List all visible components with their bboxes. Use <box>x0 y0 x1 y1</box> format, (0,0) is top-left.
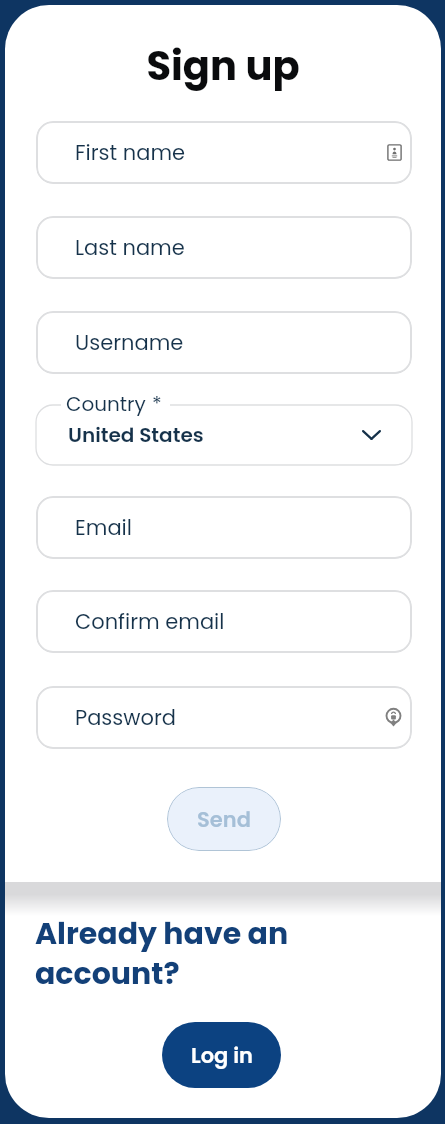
button[interactable]: Password <box>36 686 412 749</box>
staticText: Already have an account? <box>35 913 289 994</box>
staticText: Log in <box>191 1041 253 1070</box>
button[interactable]: Last name <box>36 216 412 279</box>
button[interactable]: Country <box>36 388 412 465</box>
staticText: Last name <box>75 233 185 262</box>
staticText: Email <box>75 513 132 542</box>
staticText: * <box>152 390 162 418</box>
staticText: Sign up <box>5 38 441 94</box>
button[interactable]: Username <box>36 311 412 374</box>
button[interactable]: Pick from contacts <box>387 144 402 161</box>
staticText: Password <box>75 703 176 732</box>
button[interactable]: First name <box>36 121 412 184</box>
button[interactable]: Show password <box>385 708 402 727</box>
staticText: First name <box>75 138 186 167</box>
staticText: United States <box>68 421 204 449</box>
button[interactable]: Log in <box>162 1022 281 1088</box>
staticText: Send <box>197 805 251 834</box>
staticText: Confirm email <box>75 607 225 636</box>
button[interactable]: Open country list <box>362 430 381 440</box>
button[interactable]: Confirm email <box>36 590 412 653</box>
button[interactable]: Send <box>167 787 281 851</box>
button[interactable]: Email <box>36 496 412 559</box>
staticText: Username <box>75 328 184 357</box>
staticText: Country <box>66 390 152 418</box>
